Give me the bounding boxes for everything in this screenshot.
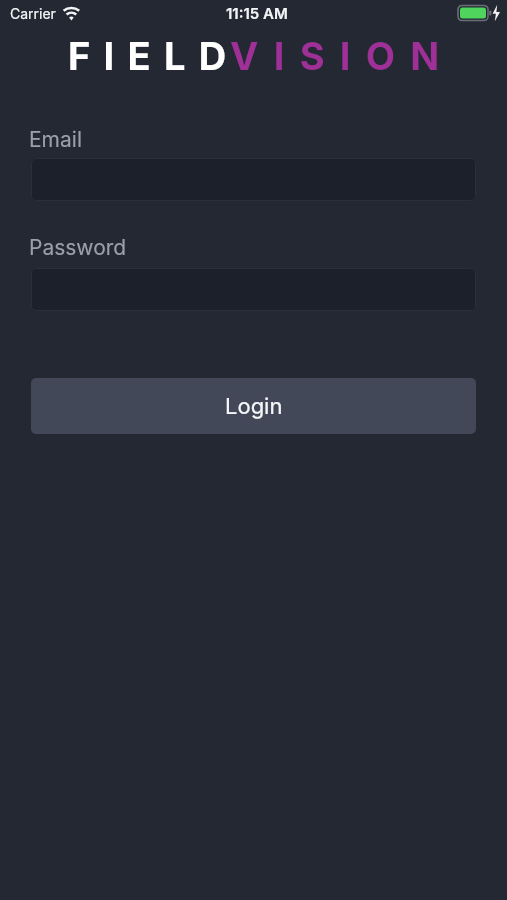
- staticText: FIELD: [68, 33, 240, 79]
- button[interactable]: [31, 158, 476, 201]
- staticText: Password: [29, 235, 127, 260]
- staticText: VISION: [230, 33, 455, 79]
- button[interactable]: [31, 268, 476, 311]
- staticText: Email: [29, 127, 82, 152]
- staticText: Carrier: [10, 5, 56, 22]
- button[interactable]: Login: [31, 378, 476, 434]
- staticText: 11:15 AM: [226, 4, 288, 22]
- staticText: Login: [225, 393, 283, 420]
